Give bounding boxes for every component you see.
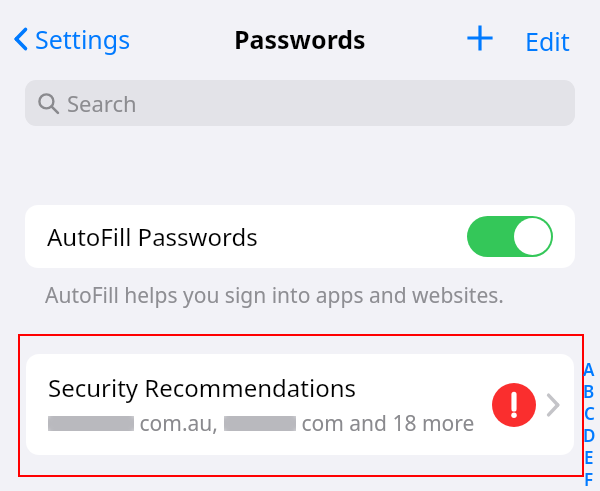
button[interactable]: Alphabet index xyxy=(580,358,598,490)
button[interactable]: Security Recommendations xyxy=(26,354,574,455)
staticText: AutoFill Passwords xyxy=(47,220,258,253)
staticText: com and 18 more xyxy=(296,409,475,438)
button[interactable]: Edit xyxy=(519,21,576,61)
staticText: C xyxy=(584,402,595,424)
staticText: Security Recommendations xyxy=(48,371,356,404)
staticText: AutoFill helps you sign into apps and we… xyxy=(45,281,504,310)
button[interactable]: Add password xyxy=(462,20,498,56)
button[interactable]: AutoFill Passwords toggle, on xyxy=(467,216,553,257)
staticText: D xyxy=(583,424,596,446)
staticText: Search xyxy=(67,88,137,118)
staticText: B xyxy=(583,380,595,402)
staticText: Edit xyxy=(525,24,570,58)
staticText: Passwords xyxy=(234,22,366,56)
button[interactable]: Search xyxy=(25,80,575,126)
button[interactable]: AutoFill Passwords xyxy=(25,205,575,268)
staticText: Settings xyxy=(35,22,131,56)
staticText: E xyxy=(584,446,594,468)
staticText: com.au, xyxy=(134,409,224,438)
staticText: A xyxy=(583,358,595,380)
staticText: F xyxy=(584,468,594,490)
button[interactable]: Settings xyxy=(8,18,137,60)
